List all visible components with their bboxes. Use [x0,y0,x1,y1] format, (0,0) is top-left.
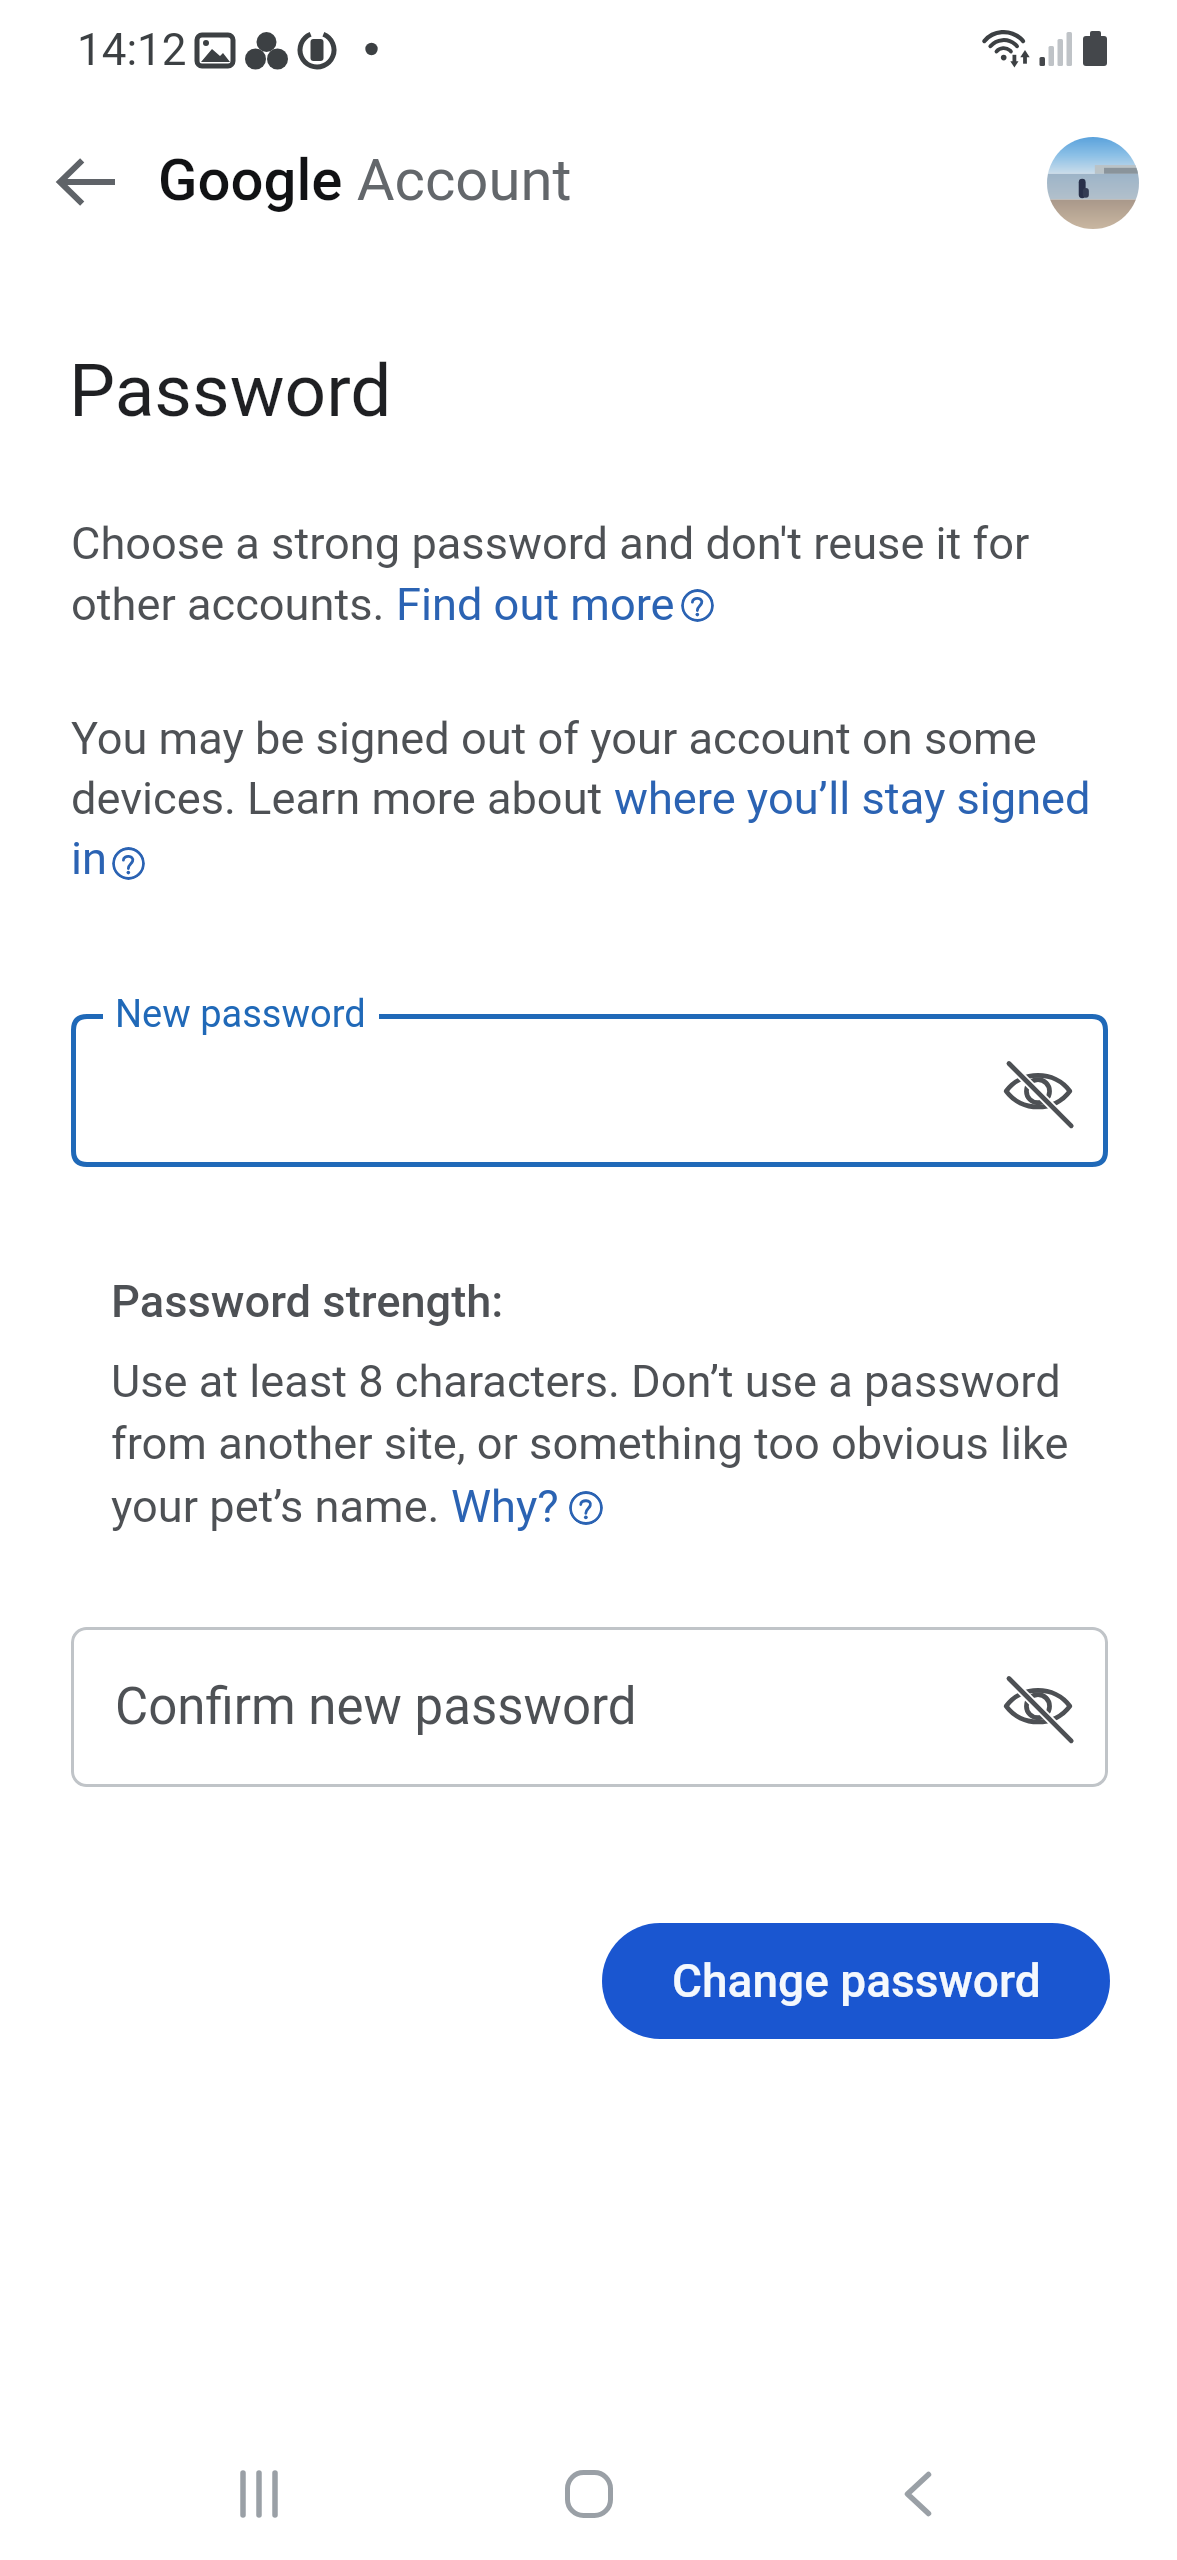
staticText: Confirm new password [115,1677,637,1737]
staticText: Use at least 8 characters. Don’t use a p… [111,1355,1061,1408]
button[interactable]: Help [569,1491,603,1525]
staticText: Find out more [396,578,675,631]
button[interactable]: Show confirm password [984,1655,1092,1763]
staticText: devices. Learn more about [71,772,614,825]
button[interactable]: Help [112,847,145,880]
button[interactable]: Google Account profile picture [1047,137,1139,229]
button[interactable]: Find out more [396,578,675,640]
staticText: 14:12 [77,24,187,76]
staticText: Password strength: [111,1275,504,1328]
button[interactable]: Back [840,2416,996,2560]
staticText: Choose a strong password and don't reuse… [71,517,1030,570]
staticText: Why? [451,1480,559,1533]
button[interactable]: Change password [602,1923,1110,2039]
staticText: other accounts. [71,578,396,631]
button[interactable]: Help [681,589,714,622]
button[interactable]: New password [71,992,1108,1167]
staticText: from another site, or something too obvi… [111,1417,1069,1470]
staticText: in [71,832,107,885]
button[interactable]: where you’ll stay signed [614,772,1091,834]
button[interactable]: Home [511,2416,667,2560]
staticText: Password [69,348,392,434]
staticText: Change password [672,1954,1041,2008]
button[interactable]: Recent apps [182,2416,338,2560]
button[interactable]: Navigate up [32,127,142,237]
staticText: New password [115,992,366,1037]
staticText: Google Account [158,146,572,214]
button[interactable]: Show new password [984,1040,1092,1148]
staticText: your pet’s name. [111,1480,451,1533]
button[interactable]: in [71,832,107,894]
button[interactable]: Confirm new password [71,1627,1108,1787]
staticText: You may be signed out of your account on… [71,712,1037,765]
button[interactable]: Why? [451,1480,559,1542]
staticText: where you’ll stay signed [614,772,1091,825]
